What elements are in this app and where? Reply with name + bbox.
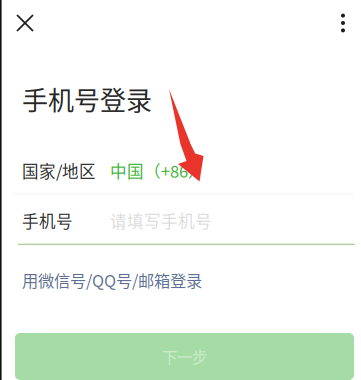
- staticText: 下一步: [162, 345, 207, 368]
- staticText: 手机号登录: [22, 80, 152, 118]
- staticText: 用微信号/QQ号/邮箱登录: [22, 268, 202, 292]
- button[interactable]: Close: [0, 0, 47, 45]
- button[interactable]: 手机号: [0, 212, 361, 245]
- staticText: 国家/地区: [22, 159, 96, 183]
- staticText: 请填写手机号: [110, 209, 212, 233]
- button[interactable]: 用微信号/QQ号/邮箱登录: [0, 245, 222, 302]
- staticText: 中国（+86）: [110, 159, 205, 183]
- button[interactable]: More options: [327, 0, 361, 44]
- staticText: 手机号: [22, 209, 73, 233]
- button[interactable]: 国家/地区: [0, 162, 361, 195]
- button[interactable]: 下一步: [15, 333, 354, 380]
